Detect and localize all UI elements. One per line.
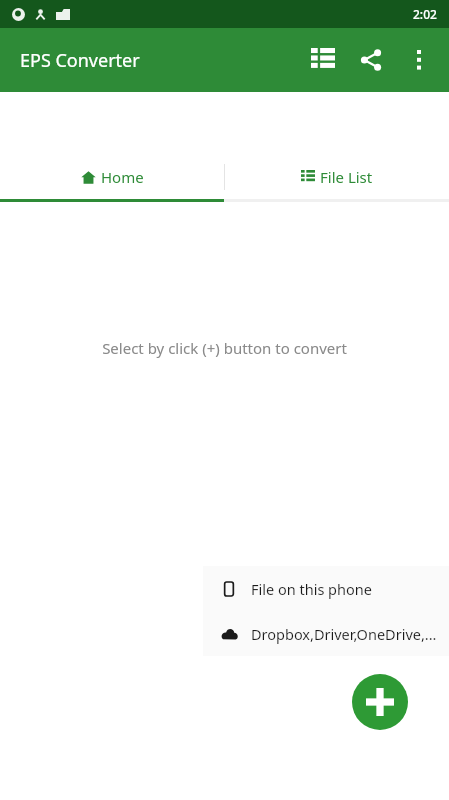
button[interactable]: Dropbox,Driver,OneDrive,... (203, 611, 449, 656)
button[interactable]: File on this phone (203, 566, 449, 611)
staticText: Select by click (+) button to convert (0, 338, 449, 358)
button[interactable]: Home (0, 155, 224, 199)
staticText: Dropbox,Driver,OneDrive,... (251, 624, 437, 644)
button[interactable]: List view (299, 36, 347, 84)
button[interactable]: Share (347, 36, 395, 84)
staticText: File on this phone (251, 579, 372, 599)
button[interactable]: File List (225, 155, 449, 199)
staticText: 2:02 (413, 6, 437, 22)
staticText: EPS Converter (20, 48, 140, 73)
button[interactable]: More options (395, 36, 443, 84)
staticText: File List (320, 167, 373, 187)
button[interactable]: Add file (352, 674, 408, 730)
staticText: Home (101, 167, 144, 187)
